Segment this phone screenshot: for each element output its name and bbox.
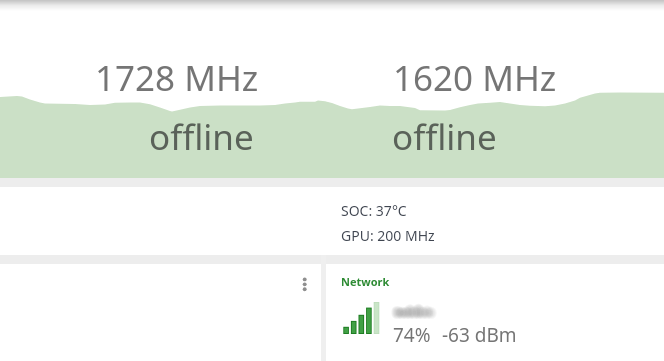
button[interactable]: 1620 MHz	[332, 0, 664, 178]
staticText: GPU: 200 MHz	[341, 226, 435, 245]
button[interactable]: 1728 MHz	[0, 0, 332, 178]
button[interactable]: SOC: 37°C	[0, 187, 664, 255]
staticText: offline	[149, 113, 254, 161]
staticText: offline	[392, 113, 497, 161]
staticText: 1620 MHz	[393, 54, 557, 102]
button[interactable]: More options	[291, 268, 318, 295]
button[interactable]: More options	[0, 264, 321, 361]
staticText: 74%	[393, 322, 431, 348]
staticText: Network	[341, 274, 390, 289]
staticText: 1728 MHz	[95, 54, 259, 102]
staticText: SOC: 37°C	[341, 201, 407, 220]
staticText: -63 dBm	[442, 322, 517, 348]
button[interactable]: Network	[326, 264, 664, 361]
